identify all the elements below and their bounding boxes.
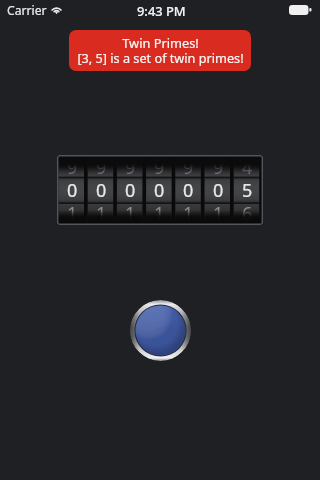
staticText: 9:43 PM: [137, 2, 186, 20]
staticText: 0: [125, 178, 136, 201]
staticText: 1: [213, 201, 224, 224]
staticText: 1: [125, 201, 136, 224]
staticText: 0: [154, 178, 165, 201]
staticText: 9: [183, 155, 194, 178]
button[interactable]: Twin Primes!: [69, 30, 251, 71]
staticText: [3, 5] is a set of twin primes!: [77, 49, 244, 66]
staticText: Carrier: [7, 2, 47, 19]
staticText: 0: [183, 178, 194, 201]
staticText: 9: [213, 155, 224, 178]
staticText: 9: [67, 155, 78, 178]
staticText: 0: [213, 178, 224, 201]
staticText: 9: [96, 155, 107, 178]
staticText: 0: [67, 178, 78, 201]
staticText: 1: [67, 201, 78, 224]
staticText: 1: [183, 201, 194, 224]
button[interactable]: Start: [130, 300, 191, 361]
staticText: 1: [154, 201, 165, 224]
staticText: 5: [242, 178, 253, 201]
staticText: 6: [242, 201, 253, 224]
staticText: Twin Primes!: [122, 34, 199, 51]
button[interactable]: 9: [57, 155, 263, 225]
staticText: 0: [96, 178, 107, 201]
staticText: 1: [96, 201, 107, 224]
staticText: 9: [125, 155, 136, 178]
staticText: 4: [242, 155, 253, 178]
staticText: 9: [154, 155, 165, 178]
